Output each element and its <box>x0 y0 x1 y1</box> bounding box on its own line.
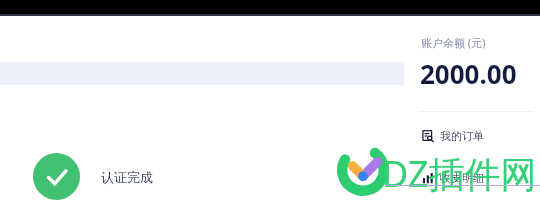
staticText: 2000.00 <box>420 56 517 91</box>
staticText: DZ插件网 <box>382 149 537 198</box>
button[interactable]: 收支明细 <box>406 169 540 187</box>
staticText: 我的订单 <box>440 129 484 143</box>
button[interactable]: 认证完成 <box>33 153 161 200</box>
staticText: 收支明细 <box>440 171 484 185</box>
button[interactable]: 我的订单 <box>406 127 540 145</box>
staticText: 认证完成 <box>101 169 153 185</box>
staticText: DZ插件网 <box>382 149 537 198</box>
staticText: 账户余额 (元) <box>421 35 486 50</box>
